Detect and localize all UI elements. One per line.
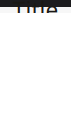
staticText: Title: [12, 0, 58, 25]
